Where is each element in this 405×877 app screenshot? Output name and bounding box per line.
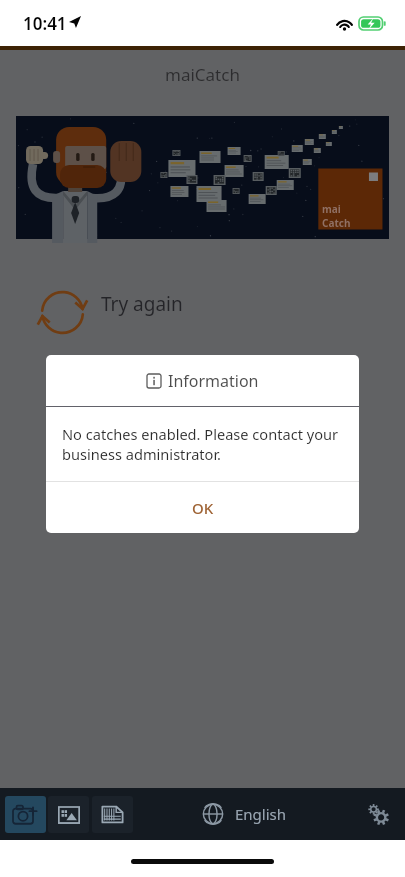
button[interactable]: English xyxy=(202,803,287,825)
staticText: mai xyxy=(322,202,341,216)
staticText: OK xyxy=(192,498,214,518)
staticText: No catches enabled. Please contact your … xyxy=(62,424,345,465)
staticText: Catch xyxy=(322,216,351,230)
button[interactable]: OK xyxy=(46,482,359,533)
button[interactable]: Pick image xyxy=(48,796,89,833)
button[interactable]: Take photo xyxy=(5,796,46,833)
staticText: Information xyxy=(168,370,259,392)
staticText: Try again xyxy=(101,291,183,317)
button[interactable]: Scan document xyxy=(92,796,133,833)
staticText: maiCatch xyxy=(165,63,240,86)
button[interactable]: Try again xyxy=(16,239,389,355)
staticText: 10:41 xyxy=(23,12,67,35)
button[interactable]: Settings xyxy=(362,798,394,830)
staticText: English xyxy=(235,804,287,824)
